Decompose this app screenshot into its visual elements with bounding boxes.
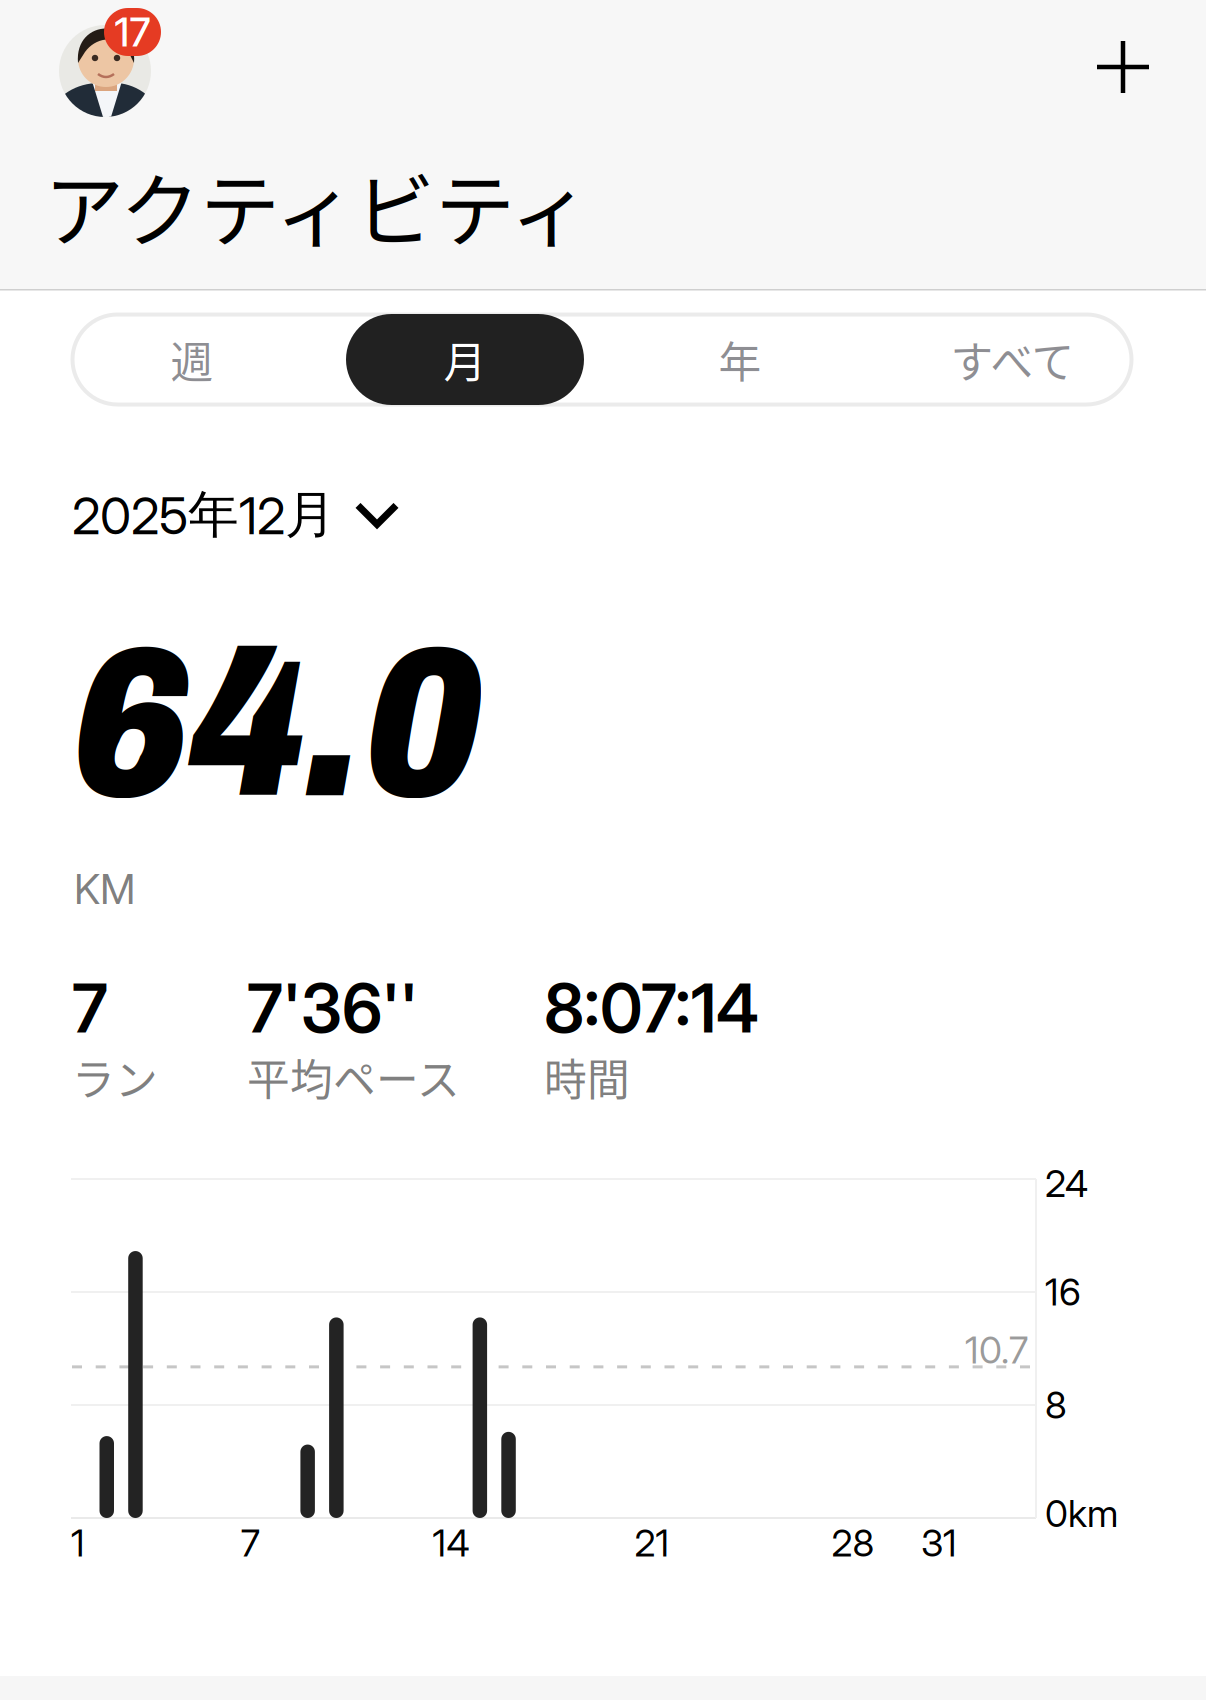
- staticText: アクティビティ: [44, 147, 590, 263]
- staticText: 31: [921, 1520, 957, 1566]
- staticText: 14: [433, 1520, 470, 1566]
- button[interactable]: Add: [1077, 21, 1169, 113]
- button[interactable]: 週: [66, 314, 318, 405]
- staticText: 0km: [1045, 1491, 1118, 1536]
- button[interactable]: すべて: [886, 314, 1138, 405]
- staticText: 時間: [544, 1046, 630, 1108]
- button[interactable]: Profile: [59, 25, 169, 121]
- button[interactable]: 年: [614, 314, 866, 405]
- staticText: 28: [831, 1520, 874, 1566]
- staticText: 1: [71, 1520, 85, 1566]
- staticText: 7'36'': [247, 968, 418, 1049]
- staticText: 64.0: [72, 608, 481, 840]
- staticText: 17: [114, 8, 150, 56]
- staticText: 2025年12月: [72, 483, 336, 547]
- staticText: 平均ペース: [247, 1046, 460, 1108]
- staticText: 16: [1045, 1269, 1081, 1315]
- staticText: KM: [74, 864, 135, 914]
- button[interactable]: 2025年12月: [72, 483, 396, 547]
- staticText: 7: [241, 1520, 260, 1566]
- button[interactable]: 月: [346, 314, 584, 405]
- staticText: 月: [443, 329, 486, 390]
- staticText: すべて: [950, 329, 1074, 390]
- staticText: 7: [72, 968, 108, 1049]
- staticText: 年: [718, 329, 761, 390]
- staticText: 週: [170, 329, 213, 390]
- staticText: 8: [1045, 1382, 1067, 1428]
- staticText: 24: [1045, 1161, 1088, 1206]
- staticText: 10.7: [965, 1327, 1028, 1372]
- staticText: 21: [634, 1520, 669, 1566]
- staticText: ラン: [72, 1046, 158, 1108]
- staticText: 8:07:14: [544, 968, 759, 1049]
